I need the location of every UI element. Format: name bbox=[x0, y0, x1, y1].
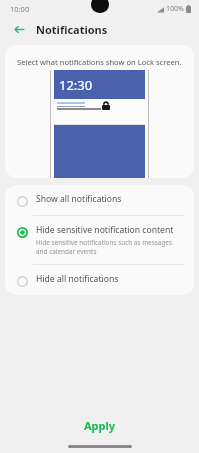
staticText: 10:00 bbox=[10, 4, 30, 14]
staticText: Hide sensitive notification content bbox=[36, 224, 174, 236]
button[interactable]: Apply bbox=[0, 410, 199, 440]
staticText: 100% bbox=[166, 4, 184, 14]
staticText: Notifications bbox=[36, 22, 108, 37]
staticText: Show all notifications bbox=[36, 193, 122, 205]
staticText: Hide sensitive notifications such as mes… bbox=[36, 238, 184, 256]
staticText: Apply bbox=[84, 418, 116, 433]
button[interactable]: Show all notifications bbox=[5, 185, 194, 215]
button[interactable]: Hide all notifications bbox=[5, 265, 194, 295]
staticText: Hide all notifications bbox=[36, 273, 119, 285]
staticText: 12:30 bbox=[59, 76, 93, 94]
staticText: Select what notifications show on Lock s… bbox=[17, 57, 182, 67]
button[interactable]: Hide sensitive notification content bbox=[5, 216, 194, 264]
button[interactable]: Back bbox=[10, 20, 28, 38]
